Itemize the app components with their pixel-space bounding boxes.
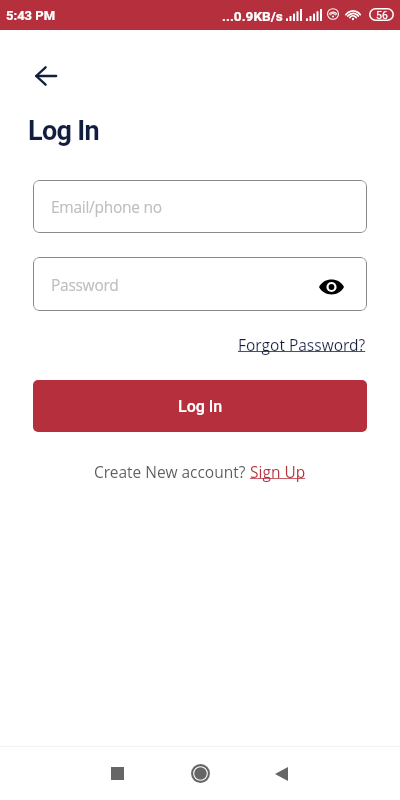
button[interactable]: Back — [24, 54, 68, 98]
button[interactable]: Recent apps — [94, 750, 140, 796]
staticText: Create New account? — [94, 461, 250, 482]
staticText: 56 — [376, 9, 388, 21]
staticText: 5:43 PM — [6, 8, 56, 23]
button[interactable]: Home — [177, 750, 223, 796]
button[interactable]: Forgot Password? — [238, 334, 366, 355]
button[interactable]: Sign Up — [250, 461, 306, 482]
staticText: Password — [51, 274, 119, 295]
button[interactable]: Show password — [313, 269, 349, 305]
staticText: Log In — [28, 115, 99, 147]
staticText: ...0.9KB/s — [222, 8, 283, 24]
staticText: Email/phone no — [51, 196, 162, 217]
button[interactable]: Password — [33, 257, 367, 311]
button[interactable]: Email/phone no — [33, 180, 367, 233]
button[interactable]: Log In — [33, 380, 367, 432]
staticText: Forgot Password? — [238, 334, 366, 355]
button[interactable]: Back — [258, 751, 304, 797]
staticText: Log In — [178, 397, 223, 416]
